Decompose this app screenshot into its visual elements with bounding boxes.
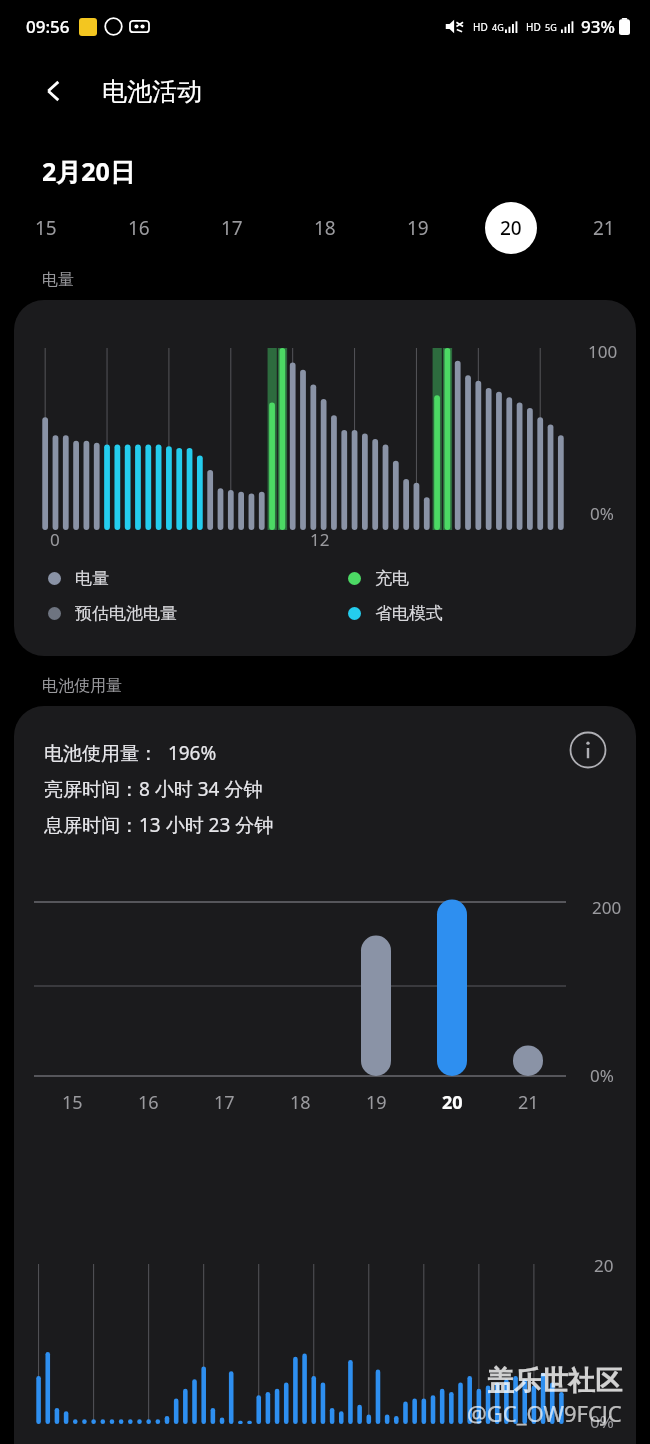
button[interactable]: 电池使用量： 196% — [14, 706, 636, 1444]
staticText: 93% — [581, 15, 615, 38]
button[interactable]: 21 — [578, 202, 630, 254]
staticText: 15 — [35, 215, 57, 241]
staticText: 20 — [442, 1090, 463, 1115]
button[interactable]: 15 — [20, 202, 72, 254]
staticText: 4G — [492, 21, 504, 33]
staticText: 09:56 — [26, 15, 70, 38]
staticText: 2月20日 — [42, 154, 135, 188]
staticText: 15 — [62, 1090, 83, 1115]
staticText: 电池使用量： 196% — [44, 740, 217, 766]
staticText: 电池使用量 — [42, 676, 122, 696]
staticText: 0% — [590, 1064, 614, 1087]
staticText: 息屏时间：13 小时 23 分钟 — [44, 812, 274, 838]
staticText: 充电 — [375, 568, 409, 589]
staticText: 17 — [214, 1090, 235, 1115]
staticText: 18 — [314, 215, 336, 241]
staticText: 200 — [592, 896, 622, 919]
button[interactable]: 18 — [299, 202, 351, 254]
staticText: 省电模式 — [375, 603, 443, 624]
staticText: 16 — [128, 215, 150, 241]
staticText: 19 — [366, 1090, 387, 1115]
button[interactable]: 100 — [14, 300, 636, 656]
staticText: 20 — [500, 215, 522, 241]
staticText: 18 — [290, 1090, 311, 1115]
staticText: 0% — [590, 1410, 614, 1433]
button[interactable]: 17 — [206, 202, 258, 254]
staticText: 21 — [518, 1090, 539, 1115]
staticText: 19 — [407, 215, 429, 241]
staticText: 5G — [545, 21, 557, 33]
staticText: HD — [526, 20, 541, 34]
staticText: 电量 — [75, 568, 109, 589]
staticText: 100 — [588, 340, 618, 363]
staticText: 0% — [590, 502, 614, 525]
button[interactable]: 16 — [113, 202, 165, 254]
staticText: 电池活动 — [102, 76, 202, 107]
staticText: 16 — [138, 1090, 159, 1115]
button[interactable]: 19 — [392, 202, 444, 254]
staticText: @GC_OW9FCJC — [467, 1398, 622, 1428]
button[interactable]: Info — [566, 728, 610, 772]
staticText: 12 — [310, 528, 330, 551]
staticText: 预估电池电量 — [75, 603, 177, 624]
staticText: 20 — [594, 1254, 614, 1277]
staticText: 电量 — [42, 270, 74, 290]
staticText: 亮屏时间：8 小时 34 分钟 — [44, 776, 263, 802]
button[interactable]: 20 — [485, 202, 537, 254]
staticText: 21 — [593, 215, 615, 241]
staticText: 盖乐世社区 — [487, 1364, 622, 1398]
staticText: 17 — [221, 215, 243, 241]
staticText: HD — [473, 20, 488, 34]
staticText: 0 — [50, 528, 60, 551]
button[interactable]: Back — [30, 67, 78, 115]
